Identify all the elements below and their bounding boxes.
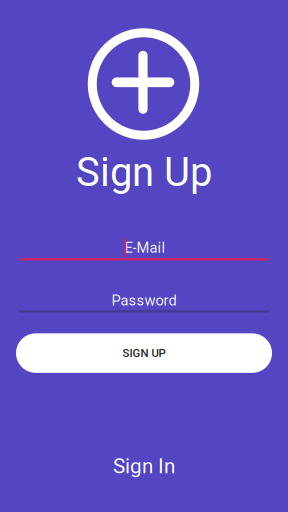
staticText: SIGN UP (122, 346, 165, 360)
staticText: Password (111, 292, 176, 309)
button[interactable]: Password (18, 290, 270, 336)
button[interactable]: SIGN UP (16, 333, 272, 373)
staticText: Sign Up (76, 149, 212, 196)
button[interactable]: E-Mail (18, 236, 270, 282)
staticText: Sign In (113, 454, 175, 478)
staticText: E-Mail (124, 239, 165, 256)
button[interactable]: Sign In (89, 445, 199, 487)
